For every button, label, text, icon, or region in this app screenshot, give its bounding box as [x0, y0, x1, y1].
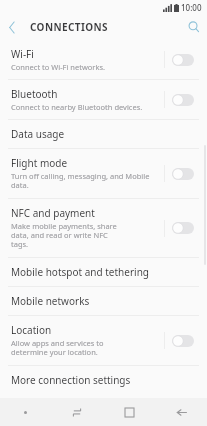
staticText: Flight mode — [11, 156, 68, 170]
staticText: Data usage — [11, 127, 65, 141]
button[interactable]: Toggle NFC and payment — [165, 219, 201, 237]
staticText: 10:00 — [181, 2, 202, 13]
button[interactable]: Toggle Bluetooth — [165, 91, 201, 109]
button[interactable]: Toggle Flight mode — [165, 165, 201, 183]
button[interactable]: Flight mode — [0, 149, 207, 198]
staticText: Make mobile payments, share data, and re… — [11, 221, 118, 250]
staticText: Location — [11, 323, 52, 337]
button[interactable]: Toggle Location — [165, 332, 201, 350]
staticText: Mobile hotspot and tethering — [11, 265, 149, 279]
button[interactable]: Back — [0, 15, 24, 39]
staticText: Allow apps and services to determine you… — [11, 338, 118, 358]
staticText: Connect to Wi-Fi networks. — [11, 62, 106, 72]
staticText: NFC and payment — [11, 206, 95, 220]
staticText: Turn off calling, messaging, and Mobile … — [11, 171, 164, 191]
button[interactable]: More connection settings — [0, 366, 207, 394]
button[interactable]: Bluetooth — [0, 80, 207, 119]
button[interactable]: Back — [155, 398, 207, 426]
staticText: Wi-Fi — [11, 47, 34, 61]
button[interactable]: Toggle Wi-Fi — [165, 51, 201, 69]
button[interactable]: Recent apps — [51, 398, 103, 426]
button[interactable]: Home — [103, 398, 155, 426]
staticText: CONNECTIONS — [30, 20, 109, 34]
button[interactable]: Location — [0, 316, 207, 365]
button[interactable]: Indicator — [0, 398, 51, 426]
staticText: More connection settings — [11, 373, 131, 387]
button[interactable]: Search — [181, 14, 207, 40]
button[interactable]: Wi-Fi — [0, 40, 207, 79]
button[interactable]: Mobile networks — [0, 287, 207, 315]
staticText: Connect to nearby Bluetooth devices. — [11, 102, 143, 112]
staticText: Mobile networks — [11, 294, 90, 308]
button[interactable]: NFC and payment — [0, 199, 207, 257]
button[interactable]: Data usage — [0, 120, 207, 148]
staticText: Bluetooth — [11, 87, 58, 101]
button[interactable]: Mobile hotspot and tethering — [0, 258, 207, 286]
